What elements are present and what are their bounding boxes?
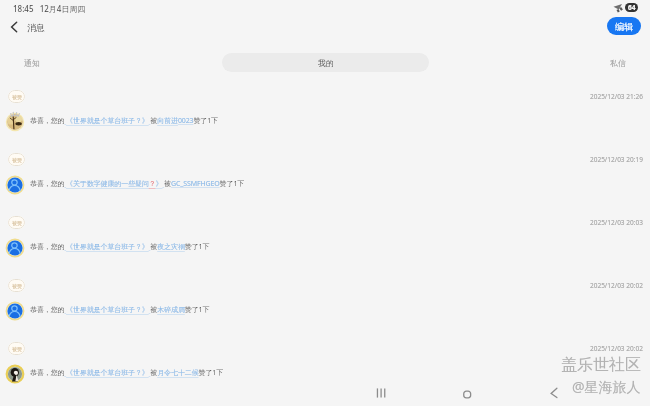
button[interactable]: 私信 (600, 53, 636, 72)
staticText: 64 (628, 3, 636, 12)
staticText: @星海旅人 (572, 377, 641, 396)
button[interactable]: 我的 (222, 53, 429, 72)
staticText: 2025/12/03 20:03 (590, 218, 643, 227)
staticText: 私信 (610, 58, 626, 68)
button[interactable]: 编辑 (607, 17, 641, 35)
staticText: 2025/12/03 20:02 (590, 344, 643, 353)
button[interactable]: Back (545, 385, 562, 402)
staticText: 被赞 (12, 283, 22, 289)
button[interactable]: 被赞 (0, 211, 650, 274)
button[interactable]: 被赞 (0, 148, 650, 211)
staticText: 被赞 (12, 94, 22, 100)
staticText: 恭喜，您的 《世界就是个草台班子？》 被木碎成屑赞了1下 (30, 305, 210, 315)
staticText: 恭喜，您的 《世界就是个草台班子？》 被月令七十二候赞了1下 (30, 368, 224, 378)
staticText: 恭喜，您的 《世界就是个草台班子？》 被向前进0023赞了1下 (30, 116, 218, 126)
staticText: 2025/12/03 20:02 (590, 281, 643, 290)
staticText: 编辑 (615, 21, 633, 32)
staticText: 被赞 (12, 157, 22, 163)
staticText: 通知 (24, 58, 40, 68)
staticText: 2025/12/03 21:26 (590, 92, 643, 101)
staticText: 恭喜，您的 《世界就是个草台班子？》 被夜之灾祸赞了1下 (30, 242, 210, 252)
staticText: 盖乐世社区 (561, 355, 641, 375)
staticText: 恭喜，您的 《关于数字健康的一些疑问？》 被GC_SSMFHGEO赞了1下 (30, 179, 245, 189)
button[interactable]: Home (460, 387, 475, 402)
button[interactable]: 通知 (14, 53, 50, 72)
staticText: 被赞 (12, 346, 22, 352)
staticText: 18:45 12月4日周四 (13, 3, 86, 14)
staticText: 我的 (318, 58, 334, 68)
staticText: 被赞 (12, 220, 22, 226)
button[interactable]: 被赞 (0, 337, 650, 400)
button[interactable]: Back (8, 17, 45, 37)
other: Back (8, 21, 20, 33)
button[interactable]: 被赞 (0, 85, 650, 148)
staticText: 2025/12/03 20:19 (590, 155, 643, 164)
button[interactable]: 被赞 (0, 274, 650, 337)
staticText: 消息 (27, 22, 45, 33)
button[interactable]: Recents (372, 385, 389, 402)
